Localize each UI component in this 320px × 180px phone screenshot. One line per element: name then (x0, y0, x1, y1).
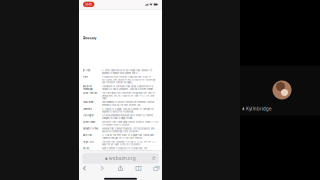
button[interactable]: Bookmarks (133, 164, 143, 173)
staticText: An area announced automatically when its… (102, 114, 153, 120)
staticText: webaim.org (109, 155, 136, 161)
staticText: semantic HTML (82, 127, 98, 130)
staticText: colour contrast (82, 92, 97, 94)
button[interactable]: Kyl Inbridge, camera off (240, 65, 320, 115)
staticText: Hardware or software that helps a person… (102, 85, 154, 90)
staticText: 9:41 (85, 2, 92, 7)
staticText: Accessible Rich Internet Applications: a… (102, 76, 155, 84)
staticText: live region (82, 114, 93, 117)
button[interactable]: Share (115, 164, 125, 173)
staticText: WCAG (82, 147, 89, 150)
staticText: The area that responds to a tap or click… (102, 140, 155, 146)
staticText: assistive technology (82, 85, 92, 90)
button[interactable]: Tabs (151, 164, 161, 173)
staticText: landmark (82, 107, 91, 110)
staticText: focus order (82, 101, 93, 104)
staticText: A link at the very start of a page that … (102, 134, 154, 139)
button[interactable]: Forward (97, 164, 107, 173)
staticText: Web Content Accessibility Guidelines, th… (102, 147, 153, 152)
staticText: The luminance ratio between foreground t… (102, 92, 155, 100)
staticText: alt text (82, 69, 90, 72)
staticText: Markup that conveys meaning, letting bro… (102, 127, 154, 133)
staticText: A region of a page, such as a banner or … (102, 107, 154, 113)
staticText: Glossary (82, 36, 96, 40)
button[interactable]: Back (79, 164, 89, 173)
button[interactable]: webaim.org (79, 151, 162, 164)
staticText: target size (82, 140, 93, 143)
staticText: skip link (82, 134, 91, 136)
staticText: A short description of an image that con… (102, 69, 152, 75)
staticText: Kyl Inbridge (246, 106, 271, 111)
staticText: The sequence in which interactive elemen… (102, 101, 154, 106)
staticText: Software that reads page content aloud o… (102, 121, 158, 126)
staticText: screen reader (82, 121, 95, 123)
staticText: ARIA (82, 76, 88, 78)
